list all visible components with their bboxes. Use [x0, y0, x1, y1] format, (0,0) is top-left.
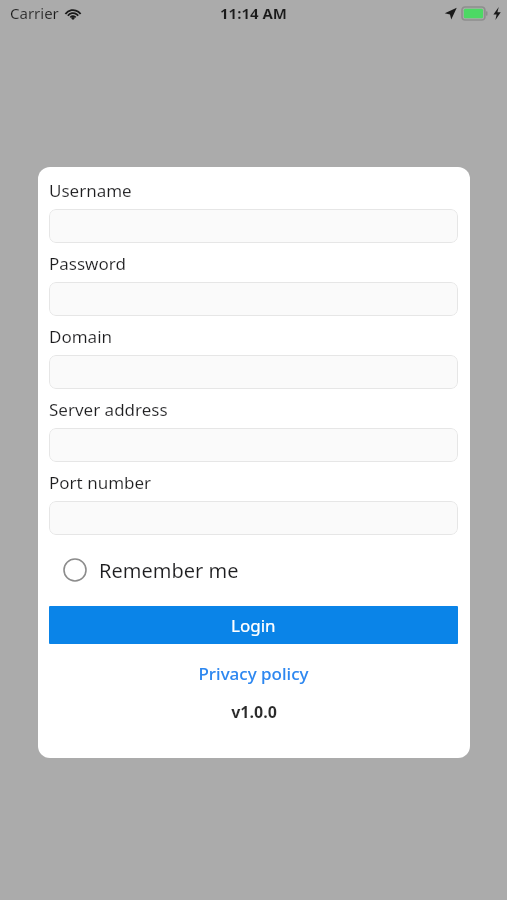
staticText: Privacy policy [198, 662, 309, 685]
staticText: 11:14 AM [220, 3, 287, 23]
staticText: Carrier [10, 3, 59, 23]
button[interactable] [49, 501, 458, 535]
staticText: Password [49, 252, 126, 275]
button[interactable]: Login [49, 606, 458, 644]
button[interactable] [49, 355, 458, 389]
button[interactable] [49, 282, 458, 316]
button[interactable] [49, 209, 458, 243]
staticText: Domain [49, 325, 113, 348]
button[interactable] [49, 428, 458, 462]
button[interactable]: Remember me [49, 549, 458, 591]
staticText: Port number [49, 471, 152, 494]
button[interactable]: Privacy policy [49, 660, 458, 686]
staticText: v1.0.0 [231, 701, 277, 723]
staticText: Remember me [99, 557, 239, 584]
staticText: Login [231, 614, 276, 637]
staticText: Server address [49, 398, 168, 421]
staticText: Username [49, 179, 132, 202]
